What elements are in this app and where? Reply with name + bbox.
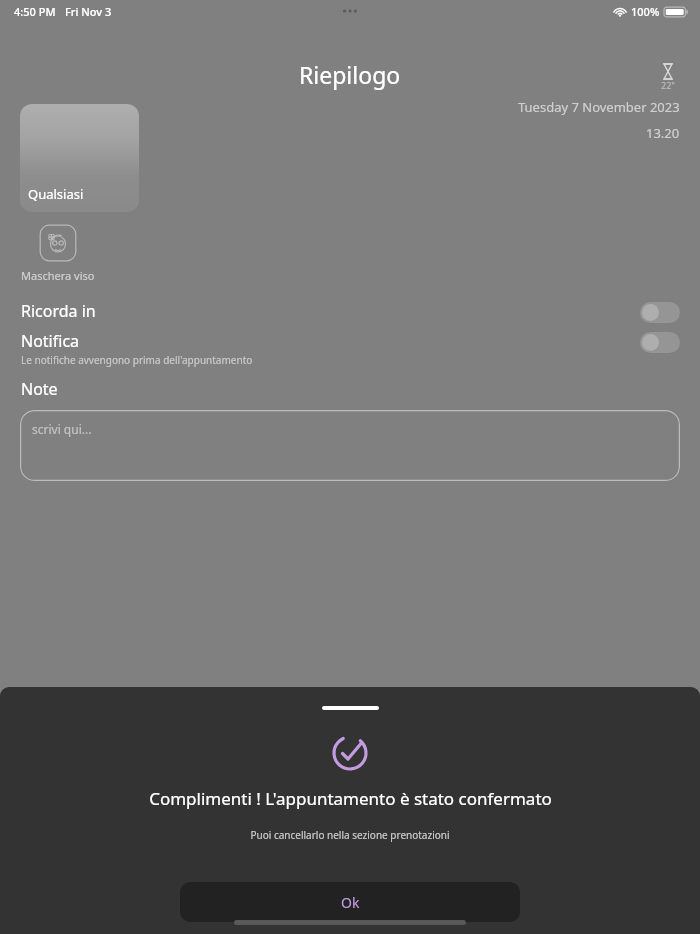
staticText: Ok	[341, 893, 360, 912]
staticText: Riepilogo	[299, 59, 401, 90]
staticText: Note	[21, 378, 58, 400]
staticText: scrivi qui...	[32, 421, 92, 437]
staticText: Le notifiche avvengono prima dell'appunt…	[21, 353, 253, 367]
staticText: 13.20	[646, 124, 680, 142]
button[interactable]: Maschera viso	[21, 224, 95, 283]
button[interactable]: Qualsiasi	[20, 104, 139, 212]
staticText: Puoi cancellarlo nella sezione prenotazi…	[250, 828, 450, 842]
staticText: Ricorda in	[21, 300, 96, 322]
button[interactable]: Ok	[180, 882, 520, 922]
staticText: Notifica	[21, 330, 80, 352]
button[interactable]: Notifica	[640, 332, 680, 353]
other: Maschera viso	[39, 224, 77, 262]
staticText: Fri Nov 3	[65, 4, 112, 19]
button[interactable]: Ricorda in	[640, 302, 680, 323]
staticText: 4:50 PM	[14, 4, 56, 19]
staticText: Qualsiasi	[28, 185, 84, 203]
button[interactable]: scrivi qui...	[20, 410, 680, 481]
staticText: Complimenti ! L'appuntamento è stato con…	[149, 787, 552, 810]
staticText: 100%	[631, 4, 660, 19]
staticText: Maschera viso	[21, 268, 95, 283]
staticText: 22"	[661, 79, 675, 91]
staticText: Tuesday 7 November 2023	[518, 98, 680, 116]
button[interactable]: Timer	[648, 54, 688, 94]
